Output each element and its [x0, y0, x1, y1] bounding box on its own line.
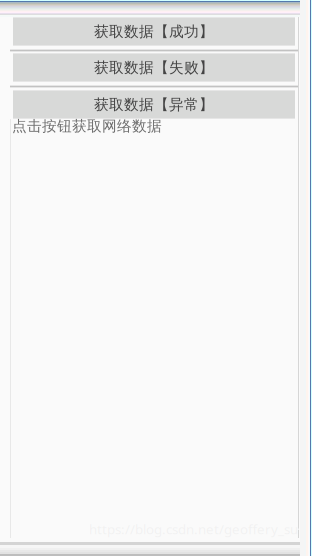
- button[interactable]: 获取数据【成功】: [10, 17, 298, 46]
- staticText: 获取数据【异常】: [94, 95, 214, 113]
- staticText: 获取数据【失败】: [94, 58, 214, 76]
- staticText: 获取数据【成功】: [94, 22, 214, 40]
- button[interactable]: 获取数据【失败】: [10, 53, 298, 82]
- staticText: 点击按钮获取网络数据: [12, 117, 162, 135]
- button[interactable]: 获取数据【异常】: [10, 90, 298, 119]
